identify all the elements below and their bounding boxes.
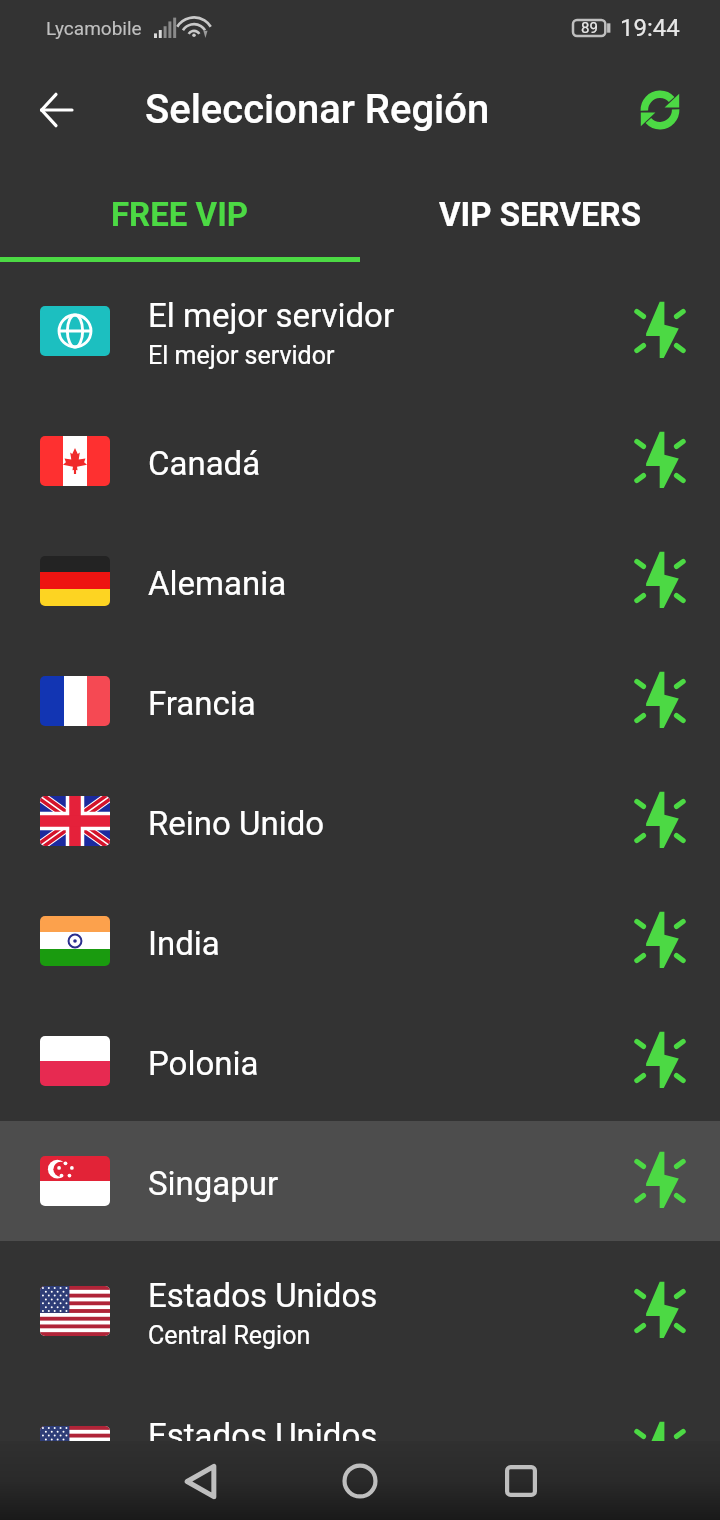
staticText: Estados Unidos [148,1276,378,1315]
button[interactable]: India [0,881,720,1001]
button[interactable]: Francia [0,641,720,761]
button[interactable]: Recents [484,1445,556,1517]
staticText: Central Region [148,1321,311,1350]
staticText: Alemania [148,564,287,603]
staticText: 19:44 [620,14,680,42]
staticText: Polonia [148,1044,259,1083]
staticText: VIP SERVERS [439,195,641,234]
staticText: Reino Unido [148,804,325,843]
button[interactable]: Back [24,78,88,142]
staticText: Estados Unidos [148,1416,378,1455]
button[interactable]: Canadá [0,401,720,521]
staticText: Francia [148,684,256,723]
button[interactable]: Reino Unido [0,761,720,881]
staticText: El mejor servidor [148,341,335,370]
button[interactable]: Alemania [0,521,720,641]
button[interactable]: Estados Unidos [0,1381,720,1520]
button[interactable]: Estados Unidos [0,1241,720,1381]
staticText: India [148,924,220,963]
button[interactable]: El mejor servidor [0,261,720,401]
staticText: Seleccionar Región [145,86,490,133]
staticText: El mejor servidor [148,296,395,335]
staticText: Canadá [148,444,261,483]
button[interactable]: Polonia [0,1001,720,1121]
staticText: Singapur [148,1164,279,1203]
button[interactable]: FREE VIP [0,163,360,261]
button[interactable]: Refresh [628,78,692,142]
staticText: Lycamobile [46,17,142,39]
staticText: FREE VIP [111,195,249,234]
button[interactable]: Home [324,1445,396,1517]
button[interactable]: VIP SERVERS [360,163,720,261]
staticText: 89 [581,19,598,37]
button[interactable]: Back [164,1445,236,1517]
staticText: East Region [148,1461,280,1490]
button[interactable]: Singapur [0,1121,720,1241]
